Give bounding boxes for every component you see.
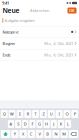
staticText: Mo., 4. Okt. 2021 (44, 52, 73, 57)
button[interactable]: C (28, 130, 35, 138)
staticText: O (65, 111, 68, 117)
staticText: N (54, 131, 57, 137)
button[interactable]: N (52, 130, 60, 138)
button[interactable]: D (22, 120, 28, 128)
staticText: Q (3, 111, 6, 117)
button[interactable]: Beginn (0, 38, 79, 49)
button[interactable]: I (56, 110, 62, 118)
staticText: OK (69, 8, 75, 13)
staticText: Y (14, 131, 16, 137)
button[interactable]: O (63, 110, 70, 118)
button[interactable]: Ende (0, 49, 79, 60)
button[interactable]: T (32, 110, 39, 118)
button[interactable]: P (71, 110, 78, 118)
button[interactable]: Z (40, 110, 47, 118)
button[interactable]: A (8, 120, 14, 128)
staticText: Aufgabe eingeben (4, 18, 34, 23)
button[interactable]: W (9, 110, 15, 118)
button[interactable]: S (15, 120, 21, 128)
button[interactable]: K (58, 120, 64, 128)
staticText: G (38, 121, 41, 127)
staticText: H (45, 121, 48, 127)
staticText: T (35, 111, 37, 117)
staticText: B (46, 131, 49, 137)
button[interactable]: L (65, 120, 71, 128)
staticText: V (38, 131, 40, 137)
button[interactable]: G (36, 120, 43, 128)
button[interactable]: F (29, 120, 35, 128)
button[interactable]: R (24, 110, 31, 118)
button[interactable]: Löschen (69, 130, 78, 138)
staticText: Ende (2, 52, 10, 57)
staticText: K (60, 121, 62, 127)
staticText: U (50, 111, 53, 117)
staticText: J (53, 121, 54, 127)
staticText: S (17, 121, 19, 127)
staticText: E (19, 111, 21, 117)
staticText: Kategorie (2, 29, 18, 34)
button[interactable]: E (16, 110, 23, 118)
staticText: X (22, 131, 24, 137)
staticText: D (24, 121, 27, 127)
staticText: C (30, 131, 33, 137)
staticText: A (9, 121, 12, 127)
button[interactable]: Y (11, 130, 18, 138)
staticText: Neue (2, 6, 19, 15)
staticText: Beginn (2, 41, 14, 46)
button[interactable]: OK (67, 7, 76, 13)
button[interactable]: J (51, 120, 57, 128)
staticText: L (67, 121, 69, 127)
button[interactable]: M (60, 130, 68, 138)
staticText: Mo., 4. Okt. 2021 (44, 41, 73, 46)
button[interactable]: Kategorie (0, 26, 79, 37)
button[interactable]: X (19, 130, 27, 138)
staticText: Z (42, 111, 44, 117)
button[interactable]: U (48, 110, 55, 118)
staticText: P (74, 111, 76, 117)
button[interactable]: V (36, 130, 43, 138)
staticText: 9:41 (2, 0, 9, 6)
staticText: W (10, 111, 14, 117)
button[interactable]: B (44, 130, 51, 138)
button[interactable]: H (43, 120, 50, 128)
staticText: F (31, 121, 33, 127)
staticText: I (59, 111, 60, 117)
staticText: M (62, 131, 66, 137)
button[interactable]: Umschalt (1, 130, 10, 138)
staticText: R (27, 111, 29, 117)
staticText: Abbrechen (30, 8, 49, 13)
button[interactable]: Q (1, 110, 8, 118)
